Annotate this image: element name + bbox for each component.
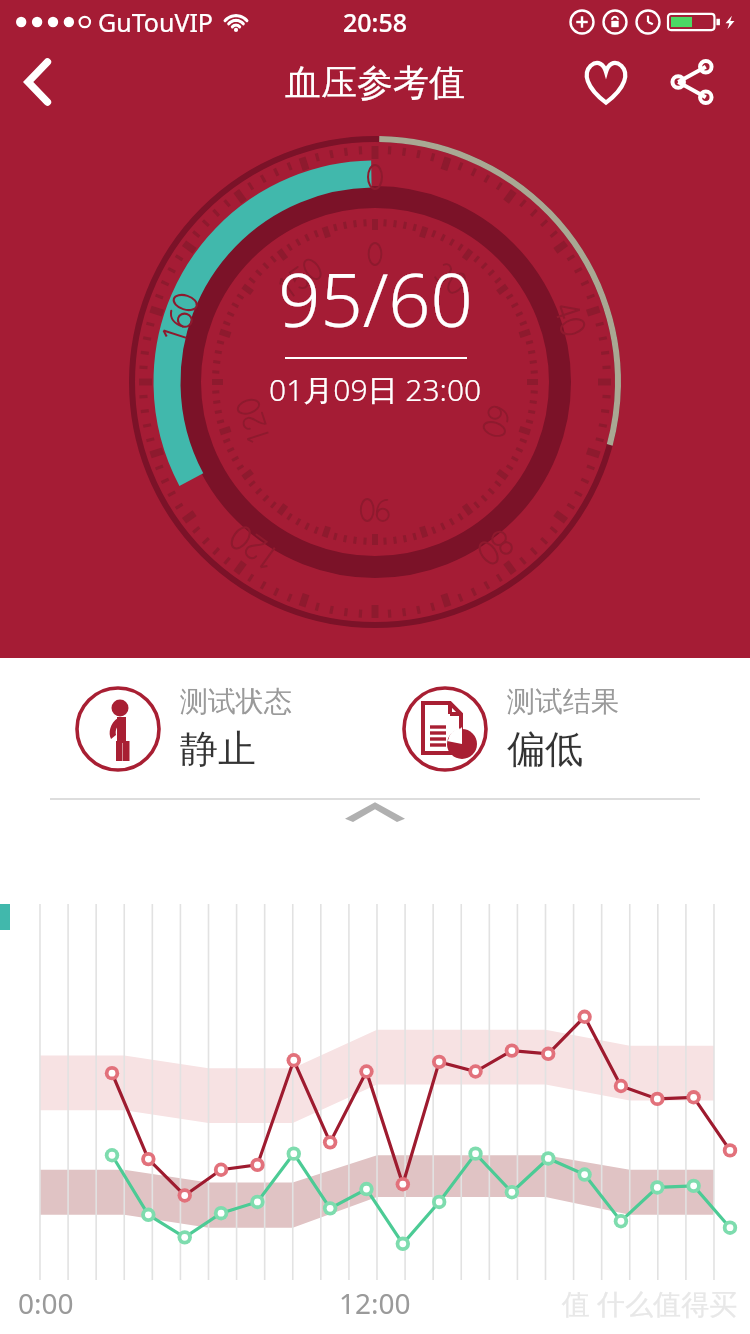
button[interactable]: 测试状态 [74, 684, 375, 773]
staticText: 20:58 [343, 5, 408, 39]
staticText: 测试状态 [180, 684, 292, 719]
staticText: 0:00 [18, 1284, 74, 1322]
button[interactable]: Back [0, 43, 78, 121]
button[interactable]: Favorite [570, 46, 642, 118]
staticText: 偏低 [507, 725, 583, 773]
button[interactable]: 测试结果 [401, 684, 750, 773]
staticText: 静止 [180, 725, 256, 773]
staticText: 12:00 [339, 1284, 411, 1322]
button[interactable]: Share [656, 46, 728, 118]
staticText: 值 什么值得买 [562, 1284, 738, 1322]
staticText: 01月09日 23:00 [269, 369, 482, 410]
staticText: 95/60 [278, 248, 473, 349]
button[interactable]: Collapse [343, 800, 407, 822]
staticText: 血压参考值 [285, 60, 465, 105]
staticText: GuTouVIP [98, 5, 213, 39]
staticText: 测试结果 [507, 684, 619, 719]
